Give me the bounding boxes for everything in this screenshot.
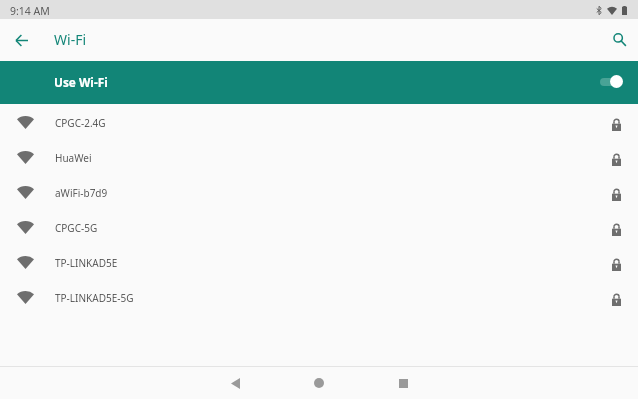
button[interactable]: Search [604,24,636,56]
staticText: 9:14 AM [10,4,50,18]
staticText: CPGC-2.4G [55,116,106,130]
staticText: aWiFi-b7d9 [55,186,108,200]
staticText: TP-LINKAD5E [55,256,118,270]
button[interactable]: Toggle Wi-Fi [600,75,623,88]
button[interactable]: CPGC-2.4G [0,105,638,140]
button[interactable]: TP-LINKAD5E [0,245,638,280]
button[interactable]: aWiFi-b7d9 [0,175,638,210]
button[interactable]: Home [295,367,343,399]
button[interactable]: Back [5,24,37,56]
button[interactable]: HuaWei [0,140,638,175]
staticText: Wi-Fi [54,30,87,49]
button[interactable]: Recents [379,367,427,399]
staticText: Use Wi-Fi [54,74,108,90]
button[interactable]: CPGC-5G [0,210,638,245]
button[interactable]: Back [211,367,259,399]
staticText: TP-LINKAD5E-5G [55,291,134,305]
button[interactable]: Use Wi-Fi [0,61,638,104]
staticText: CPGC-5G [55,221,98,235]
staticText: HuaWei [55,151,92,165]
button[interactable]: TP-LINKAD5E-5G [0,280,638,315]
